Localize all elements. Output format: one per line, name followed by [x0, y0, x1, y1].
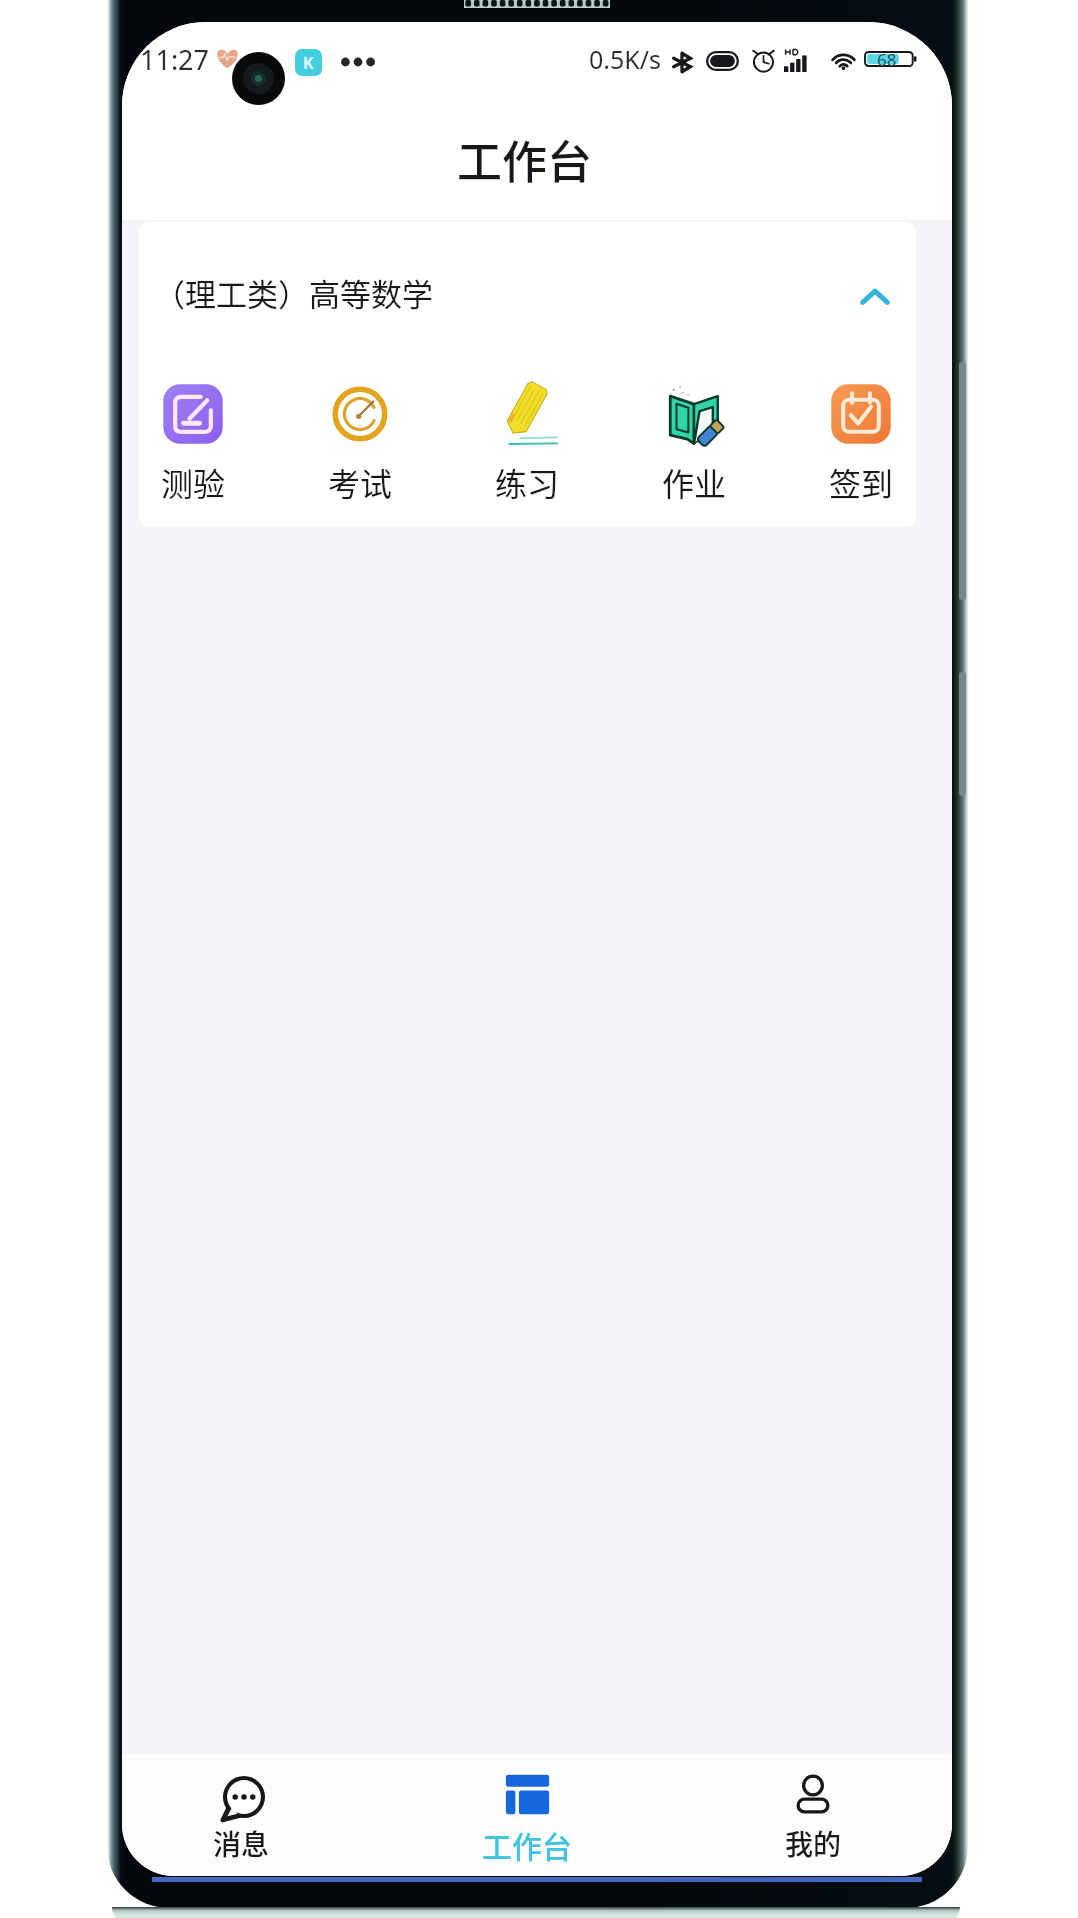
staticText: （理工类）高等数学	[154, 270, 433, 315]
staticText: 工作台	[482, 1823, 572, 1866]
staticText: 签到	[829, 459, 894, 505]
button[interactable]: （理工类）高等数学	[139, 222, 916, 322]
staticText: 0.5K/s	[589, 42, 662, 76]
button[interactable]: 消息	[180, 1754, 302, 1876]
button[interactable]: Collapse	[854, 275, 896, 317]
staticText: 11:27	[140, 41, 210, 78]
staticText: 我的	[785, 1823, 842, 1864]
staticText: 工作台	[457, 127, 593, 192]
button[interactable]: 测验	[139, 381, 247, 505]
button[interactable]: 作业	[640, 381, 748, 505]
button[interactable]: 练习	[473, 381, 581, 505]
staticText: 测验	[161, 459, 226, 505]
staticText: 68	[877, 48, 897, 70]
button[interactable]: 工作台	[466, 1754, 588, 1876]
staticText: 消息	[213, 1823, 270, 1864]
button[interactable]: 我的	[752, 1754, 874, 1876]
staticText: 考试	[328, 459, 393, 505]
button[interactable]: 签到	[807, 381, 915, 505]
staticText: K	[303, 52, 314, 74]
button[interactable]: 考试	[306, 381, 414, 505]
staticText: 作业	[662, 459, 727, 505]
staticText: 练习	[495, 459, 560, 505]
